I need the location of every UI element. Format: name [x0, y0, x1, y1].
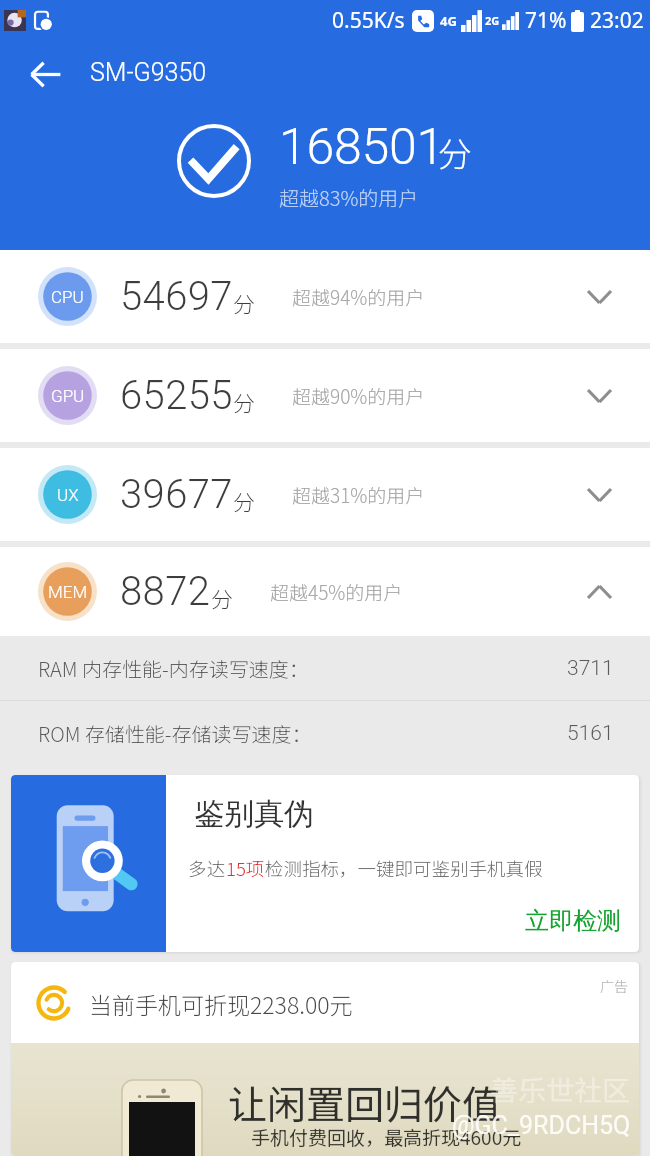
staticText: 15项: [226, 855, 265, 882]
staticText: ROM 存储性能-存储读写速度：: [38, 719, 312, 748]
staticText: 超越90%的用户: [292, 382, 425, 410]
button[interactable]: GPU: [0, 349, 650, 442]
button[interactable]: 鉴别真伪: [11, 775, 639, 952]
staticText: 当前手机可折现2238.00元: [89, 987, 353, 1020]
staticText: 71%: [525, 6, 567, 35]
staticText: RAM 内存性能-内存读写速度：: [38, 654, 309, 683]
staticText: UX: [57, 485, 79, 505]
staticText: 39677: [120, 471, 233, 518]
button[interactable]: UX: [0, 448, 650, 541]
staticText: 4G: [440, 12, 457, 30]
staticText: 广告: [600, 976, 628, 996]
staticText: 分: [233, 287, 256, 319]
staticText: CPU: [51, 287, 84, 307]
button[interactable]: MEM: [0, 547, 650, 636]
staticText: 立即检测: [525, 906, 621, 936]
button[interactable]: CPU: [0, 250, 650, 343]
staticText: 鉴别真伪: [194, 795, 314, 833]
staticText: 分: [233, 386, 256, 418]
staticText: 2G: [485, 13, 500, 28]
button[interactable]: ROM 存储性能-存储读写速度：: [38, 701, 614, 765]
staticText: 分: [233, 485, 256, 517]
staticText: 分: [211, 582, 234, 614]
staticText: 54697: [120, 273, 233, 320]
staticText: 超越45%的用户: [270, 578, 403, 606]
staticText: 善乐世社区: [490, 1069, 631, 1110]
button[interactable]: 立即检测: [525, 906, 621, 952]
staticText: 手机付费回收，最高折现4600元: [251, 1123, 522, 1151]
staticText: 让闲置回归价值: [228, 1074, 502, 1130]
staticText: @GC_9RDCH5Q: [452, 1111, 631, 1140]
button[interactable]: 当前手机可折现2238.00元: [11, 962, 639, 1156]
staticText: 超越94%的用户: [292, 283, 425, 311]
staticText: 多达: [188, 855, 226, 882]
staticText: 超越83%的用户: [279, 183, 419, 212]
staticText: MEM: [48, 582, 88, 602]
staticText: 3711: [567, 656, 614, 681]
staticText: 65255: [120, 372, 233, 419]
button[interactable]: Back: [21, 50, 69, 98]
staticText: 23:02: [590, 6, 644, 35]
staticText: GPU: [51, 386, 85, 406]
staticText: 0.55K/s: [332, 6, 405, 35]
button[interactable]: RAM 内存性能-内存读写速度：: [38, 636, 614, 700]
staticText: 超越31%的用户: [292, 481, 425, 509]
staticText: SM-G9350: [90, 58, 207, 87]
staticText: 8872: [120, 568, 211, 615]
staticText: 检测指标，一键即可鉴别手机真假: [265, 855, 543, 882]
staticText: 168501: [279, 118, 444, 177]
staticText: 5161: [567, 721, 614, 746]
staticText: 分: [438, 128, 472, 177]
